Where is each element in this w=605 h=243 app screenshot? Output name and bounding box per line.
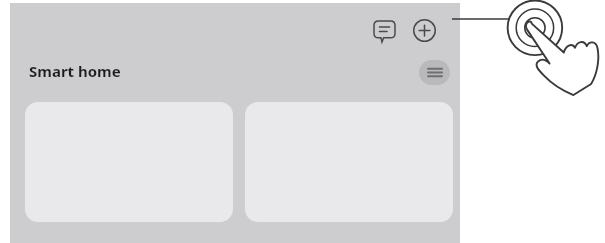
staticText: Smart home bbox=[29, 61, 121, 81]
button[interactable]: Add device bbox=[408, 14, 440, 46]
button[interactable]: Messages bbox=[368, 15, 400, 47]
button[interactable]: Menu bbox=[419, 60, 450, 85]
